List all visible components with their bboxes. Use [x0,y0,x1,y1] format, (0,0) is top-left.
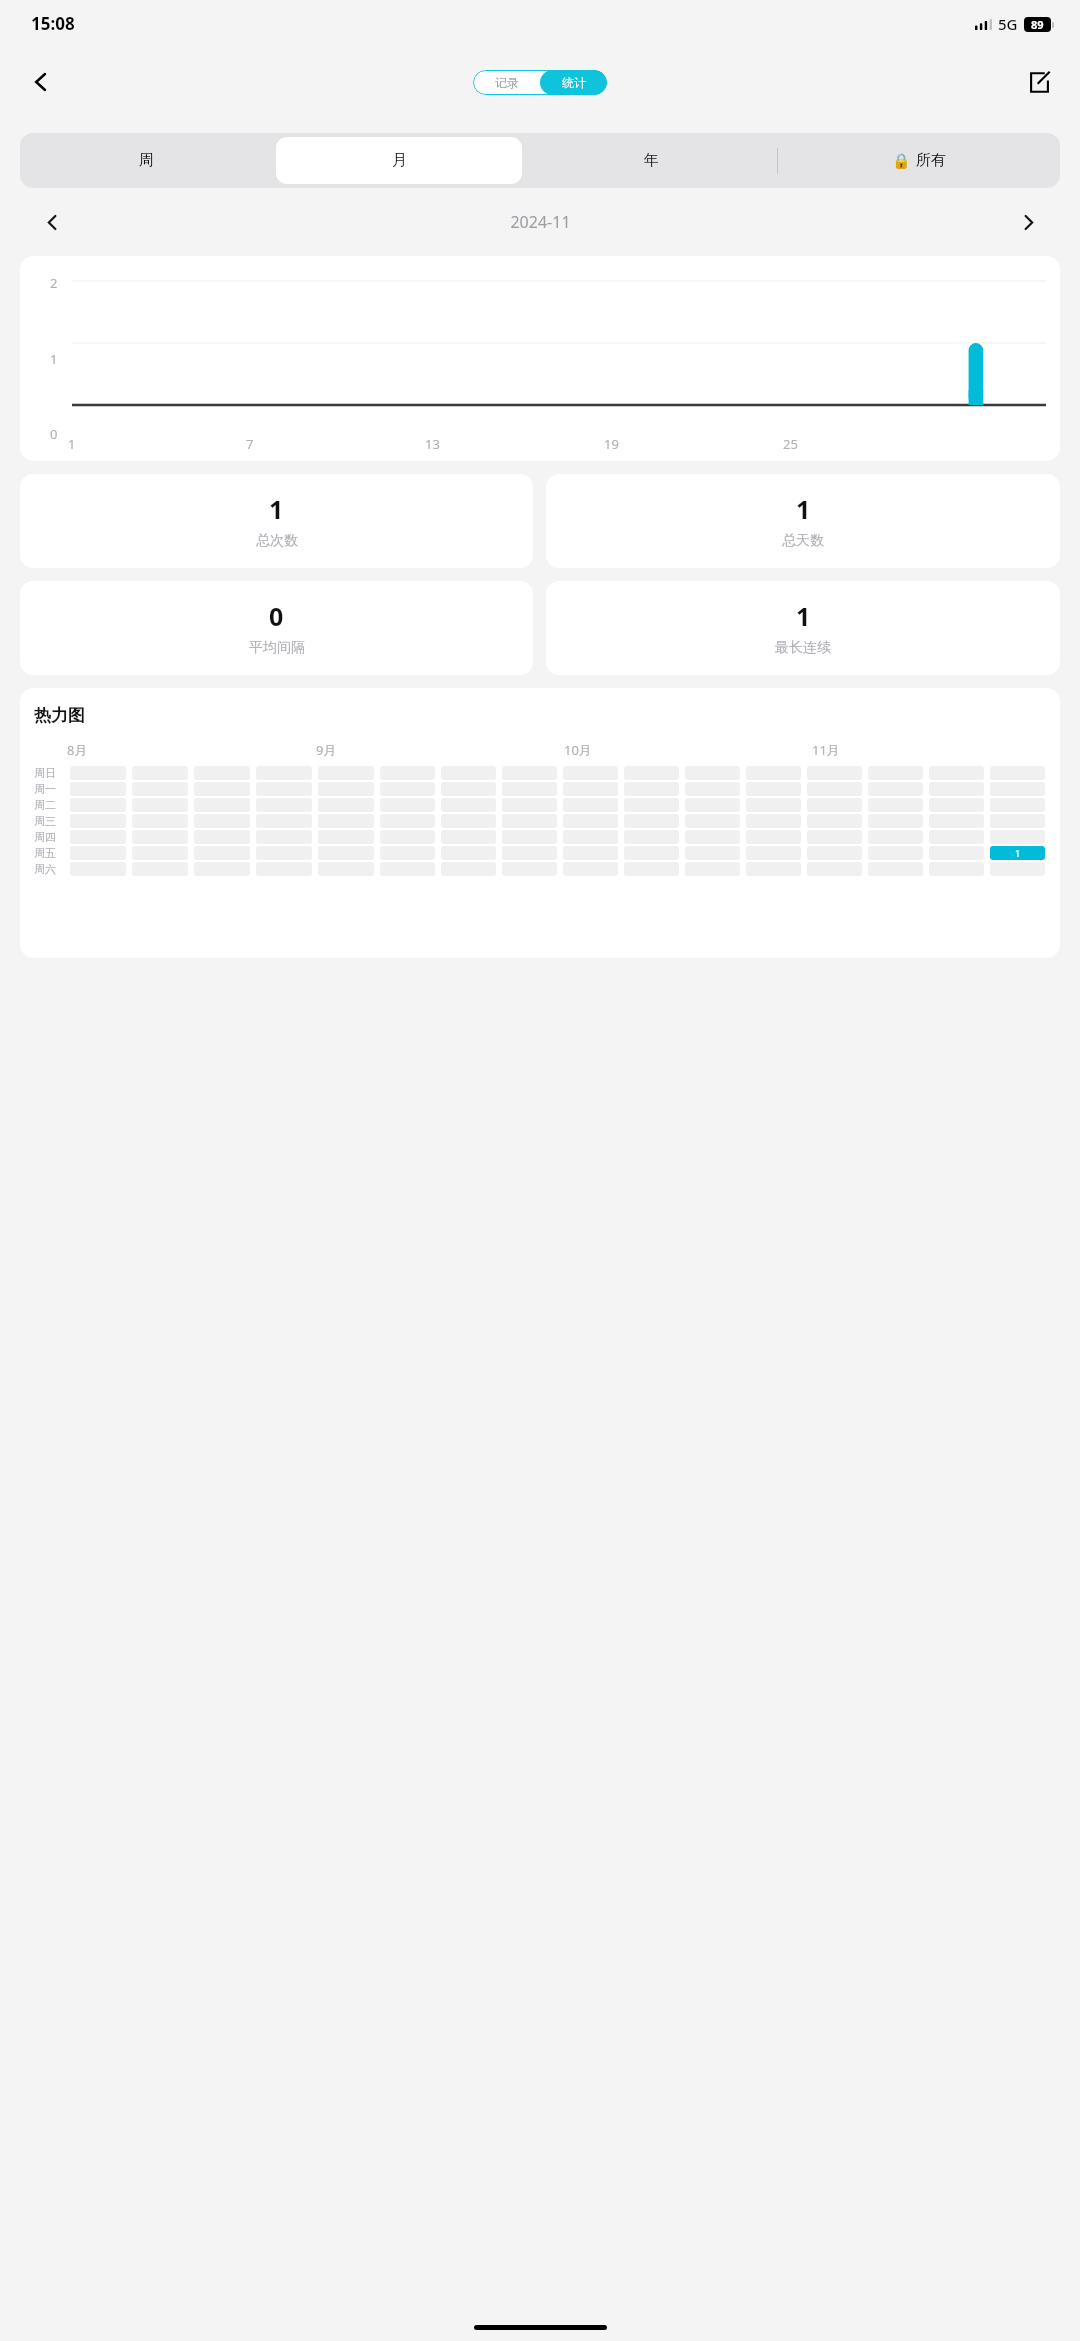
button[interactable]: 0 [20,581,533,675]
button[interactable]: 1 [990,846,1045,860]
button[interactable]: 1 [546,581,1060,675]
button[interactable]: Back [18,59,64,105]
button[interactable]: 1 [20,474,533,568]
button[interactable]: 记录 [473,70,540,95]
button[interactable]: Edit [1016,59,1062,105]
button[interactable]: 月 [276,137,522,184]
button[interactable]: Next month [1006,200,1050,244]
button[interactable]: 1 [546,474,1060,568]
button[interactable]: 🔒 [778,133,1060,188]
button[interactable]: 年 [528,137,774,184]
